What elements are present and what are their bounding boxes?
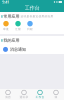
staticText: 通讯录 bbox=[19, 96, 28, 99]
staticText: 这些是你最近使用的应用 bbox=[20, 15, 53, 18]
staticText: 工作台 bbox=[24, 5, 39, 11]
button[interactable]: 日程 bbox=[24, 21, 36, 31]
button[interactable]: 通讯录 bbox=[16, 90, 32, 99]
staticText: 审批 bbox=[3, 27, 9, 31]
staticText: 我的应用 bbox=[3, 38, 19, 43]
staticText: 工作台 bbox=[35, 96, 44, 99]
staticText: 9:41 bbox=[2, 0, 9, 5]
staticText: 日程 bbox=[27, 27, 33, 31]
button[interactable]: 消息 bbox=[0, 90, 16, 99]
staticText: 消息通知 bbox=[10, 47, 26, 52]
staticText: 汇报 bbox=[15, 27, 21, 31]
button[interactable]: 汇报 bbox=[12, 21, 24, 31]
button[interactable]: 审批 bbox=[0, 21, 12, 31]
staticText: 我 bbox=[54, 96, 57, 99]
staticText: 常用应用 bbox=[3, 14, 19, 19]
button[interactable]: 我 bbox=[48, 90, 64, 99]
staticText: 消息 bbox=[5, 96, 11, 99]
button[interactable]: 工作台 bbox=[32, 90, 48, 99]
